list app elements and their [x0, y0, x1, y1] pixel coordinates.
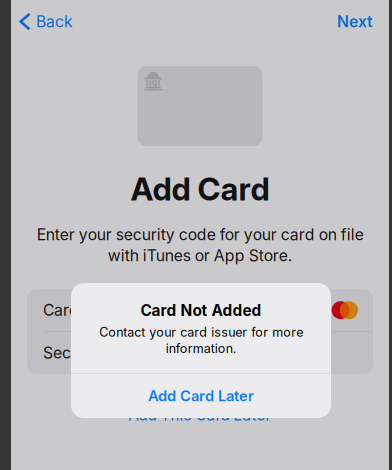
- button[interactable]: Back: [11, 3, 73, 34]
- staticText: Back: [36, 12, 73, 31]
- staticText: Card Not Added: [140, 301, 261, 320]
- staticText: Enter your security code for your card o…: [36, 225, 363, 244]
- staticText: Add Card Later: [148, 387, 254, 405]
- staticText: Next: [337, 12, 373, 31]
- staticText: information.: [165, 341, 236, 356]
- staticText: $: [151, 79, 158, 91]
- staticText: Contact your card issuer for more: [99, 325, 303, 340]
- button[interactable]: Add This Card Later: [11, 398, 389, 432]
- button[interactable]: Add Card Later: [71, 374, 331, 418]
- button[interactable]: Next: [337, 3, 389, 34]
- staticText: Add This Card Later: [128, 406, 271, 424]
- staticText: Add Card: [130, 170, 269, 208]
- staticText: with iTunes or App Store.: [107, 246, 292, 265]
- staticText: Security Code: [43, 343, 147, 362]
- staticText: Card: [43, 301, 79, 320]
